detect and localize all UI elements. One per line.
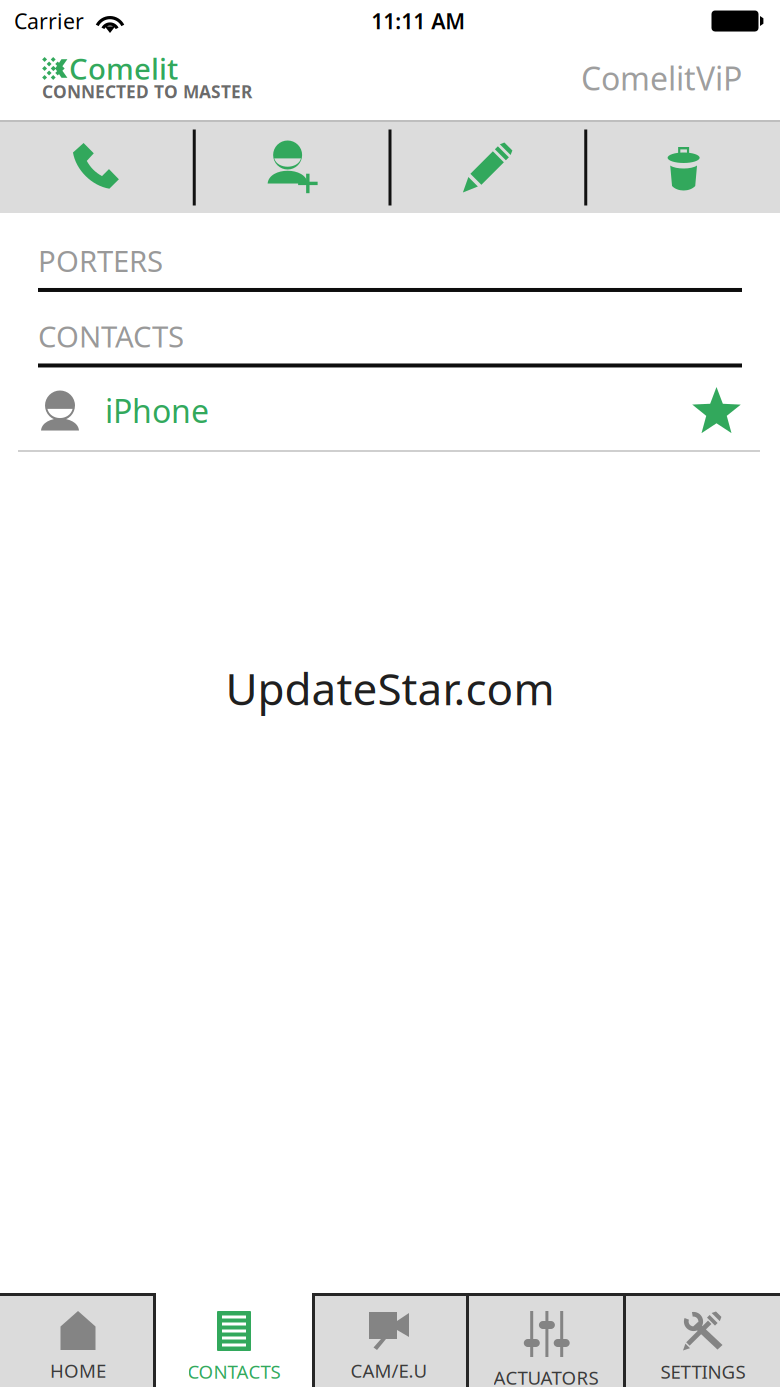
staticText: ACTUATORS <box>493 1365 598 1387</box>
staticText: Carrier <box>14 7 84 35</box>
button[interactable]: iPhone <box>0 366 780 452</box>
staticText: CONTACTS <box>187 1359 280 1384</box>
button[interactable]: Edit <box>391 122 584 213</box>
button[interactable]: CAM/E.U <box>312 1293 466 1387</box>
button[interactable]: ACTUATORS <box>469 1293 623 1387</box>
button[interactable]: Delete <box>587 122 780 213</box>
button[interactable]: HOME <box>0 1293 156 1387</box>
staticText: ComelitViP <box>581 57 742 99</box>
staticText: Comelit <box>69 49 178 88</box>
staticText: CONNECTED TO MASTER <box>42 80 252 103</box>
staticText: iPhone <box>105 389 209 432</box>
staticText: HOME <box>50 1358 106 1383</box>
staticText: PORTERS <box>38 241 163 280</box>
button[interactable]: Call <box>0 122 193 213</box>
button[interactable]: SETTINGS <box>626 1293 780 1387</box>
staticText: UpdateStar.com <box>225 659 554 717</box>
staticText: CONTACTS <box>38 316 184 355</box>
staticText: 11:11 AM <box>371 7 465 35</box>
button[interactable]: CONTACTS <box>156 1293 312 1387</box>
button[interactable]: Add contact <box>196 122 389 213</box>
staticText: CAM/E.U <box>350 1358 427 1383</box>
staticText: SETTINGS <box>660 1359 745 1384</box>
